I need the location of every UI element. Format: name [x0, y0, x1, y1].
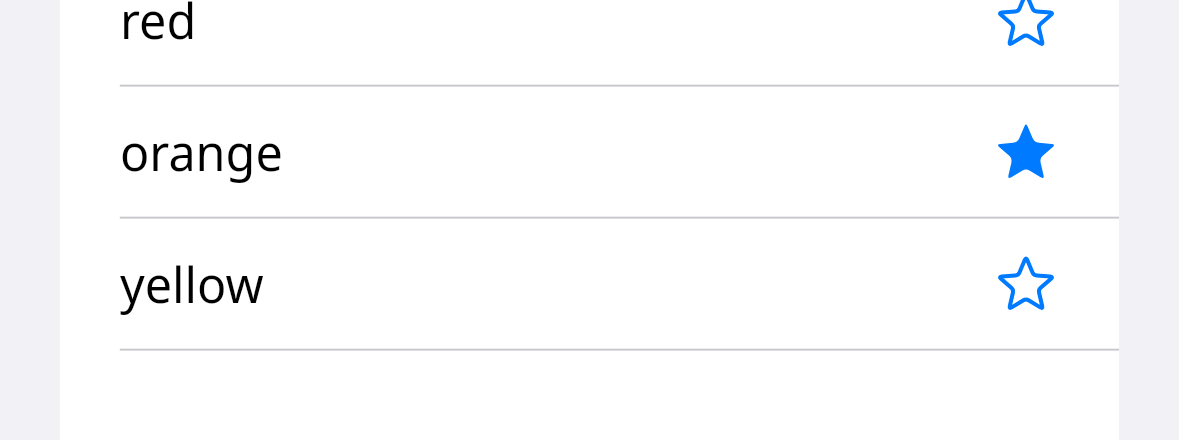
- button[interactable]: yellow: [60, 217, 1119, 349]
- staticText: orange: [120, 119, 283, 185]
- staticText: red: [120, 0, 197, 53]
- button[interactable]: orange: [60, 85, 1119, 217]
- button[interactable]: Unfavourite orange: [994, 119, 1058, 183]
- button[interactable]: Favourite yellow: [994, 251, 1058, 315]
- button[interactable]: Favourite red: [994, 0, 1058, 51]
- button[interactable]: red: [60, 0, 1119, 85]
- staticText: yellow: [120, 251, 264, 317]
